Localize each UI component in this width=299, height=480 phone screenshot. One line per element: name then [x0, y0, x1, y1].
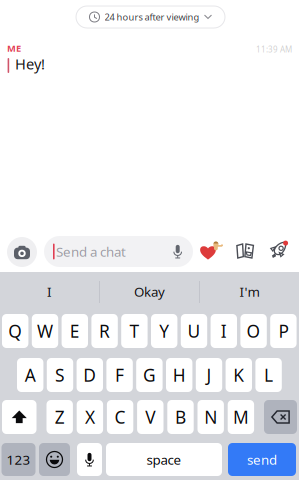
button[interactable]: V [137, 400, 163, 434]
button[interactable]: F [106, 358, 133, 392]
button[interactable]: H [166, 358, 192, 392]
button[interactable]: J [196, 358, 222, 392]
button[interactable]: W [32, 314, 58, 348]
staticText: I'm [239, 283, 259, 300]
button[interactable]: P [270, 314, 297, 348]
button[interactable]: X [77, 400, 103, 434]
staticText: N [204, 405, 217, 428]
staticText: send [247, 451, 277, 468]
staticText: S [55, 363, 65, 386]
button[interactable]: N [197, 400, 224, 434]
button[interactable]: B [167, 400, 194, 434]
staticText: M [233, 405, 249, 428]
button[interactable]: I [0, 273, 99, 310]
button[interactable]: Mini apps [270, 241, 288, 258]
button[interactable]: C [107, 400, 133, 434]
staticText: D [83, 363, 96, 386]
button[interactable]: Delete [264, 400, 297, 434]
staticText: R [99, 319, 110, 342]
button[interactable]: Emoji [39, 443, 70, 476]
staticText: C [115, 405, 126, 428]
staticText: A [25, 363, 36, 386]
staticText: Send a chat [56, 243, 126, 260]
button[interactable]: Camera [7, 237, 37, 267]
button[interactable]: Cameos [236, 242, 255, 260]
staticText: Z [55, 405, 65, 428]
button[interactable]: S [47, 358, 73, 392]
button[interactable]: K [226, 358, 252, 392]
button[interactable]: D [77, 358, 103, 392]
button[interactable]: 24 hours after viewing [76, 6, 225, 28]
button[interactable]: I'm [200, 273, 299, 310]
button[interactable]: T [121, 314, 148, 348]
button[interactable]: U [181, 314, 207, 348]
button[interactable]: 123 [1, 443, 35, 476]
staticText: Hey! [15, 54, 45, 73]
staticText: 11:39 AM [256, 44, 292, 55]
staticText: K [233, 363, 244, 386]
staticText: X [85, 405, 95, 428]
button[interactable]: Stickers [199, 240, 220, 261]
staticText: W [37, 319, 53, 342]
staticText: B [175, 405, 186, 428]
button[interactable]: Z [46, 400, 73, 434]
staticText: H [173, 363, 186, 386]
staticText: O [247, 319, 261, 342]
staticText: Q [8, 319, 22, 342]
button[interactable]: O [240, 314, 267, 348]
button[interactable]: A [17, 358, 43, 392]
button[interactable]: Okay [100, 273, 199, 310]
staticText: F [115, 363, 124, 386]
staticText: V [145, 405, 155, 428]
button[interactable]: space [106, 443, 222, 476]
staticText: T [129, 319, 139, 342]
staticText: L [264, 363, 273, 386]
staticText: E [70, 319, 80, 342]
staticText: I [47, 283, 52, 300]
staticText: ME [7, 42, 21, 54]
staticText: Okay [134, 283, 165, 300]
button[interactable]: send [228, 443, 296, 476]
staticText: I [221, 319, 227, 342]
staticText: 24 hours after viewing [104, 11, 199, 23]
button[interactable]: E [62, 314, 88, 348]
button[interactable]: Dictate [77, 443, 102, 476]
staticText: P [278, 319, 288, 342]
staticText: G [143, 363, 156, 386]
button[interactable]: L [255, 358, 282, 392]
staticText: J [206, 363, 211, 386]
staticText: space [146, 451, 181, 468]
button[interactable]: M [228, 400, 254, 434]
staticText: Y [159, 319, 169, 342]
button[interactable]: Y [151, 314, 177, 348]
button[interactable]: Q [2, 314, 28, 348]
button[interactable]: Send a chat [44, 236, 193, 267]
button[interactable]: R [91, 314, 118, 348]
button[interactable]: G [136, 358, 163, 392]
button[interactable]: Shift [2, 400, 36, 434]
staticText: 123 [6, 451, 30, 468]
staticText: U [187, 319, 200, 342]
button[interactable]: I [211, 314, 237, 348]
